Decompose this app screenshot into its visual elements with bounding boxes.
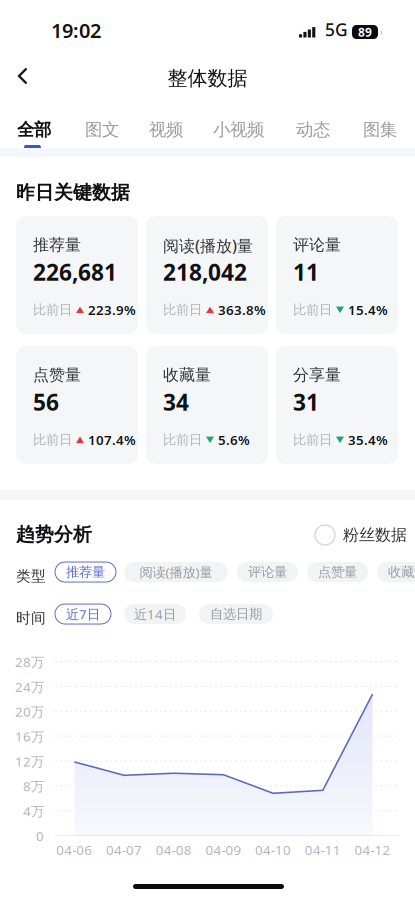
staticText: 比前日 [163, 432, 202, 448]
button[interactable]: 点赞量 [307, 562, 368, 582]
staticText: 评论量 [248, 564, 287, 580]
staticText: 收藏量 [388, 564, 415, 580]
staticText: 11 [293, 257, 319, 287]
staticText: 视频 [149, 119, 183, 140]
staticText: 全部 [17, 119, 51, 140]
button[interactable]: 视频 [141, 110, 191, 149]
staticText: 56 [33, 387, 59, 417]
staticText: 小视频 [213, 119, 264, 140]
staticText: 收藏量 [163, 365, 211, 385]
staticText: 15.4% [348, 301, 388, 319]
staticText: 8万 [23, 777, 44, 795]
staticText: 16万 [15, 728, 44, 745]
button[interactable]: 全部 [9, 110, 59, 149]
staticText: 粉丝数据 [343, 525, 407, 545]
staticText: 89 [358, 24, 372, 40]
button[interactable]: 动态 [288, 110, 338, 149]
staticText: 比前日 [163, 302, 202, 318]
button[interactable]: 收藏量 [377, 562, 415, 582]
staticText: 点赞量 [33, 365, 81, 385]
staticText: 04-07 [106, 841, 142, 859]
staticText: 自选日期 [210, 606, 262, 622]
staticText: 比前日 [293, 302, 332, 318]
button[interactable]: Back [0, 56, 46, 96]
staticText: 04-10 [255, 841, 291, 859]
button[interactable]: 推荐量 [55, 562, 116, 582]
staticText: 04-06 [56, 841, 92, 859]
staticText: 图文 [85, 119, 119, 140]
staticText: 19:02 [51, 17, 101, 44]
button[interactable]: 图文 [77, 110, 127, 149]
staticText: 20万 [15, 703, 44, 720]
staticText: 28万 [15, 653, 44, 671]
staticText: 图集 [363, 119, 397, 140]
staticText: 218,042 [163, 257, 247, 287]
staticText: 04-12 [354, 841, 390, 859]
staticText: 35.4% [348, 431, 388, 449]
staticText: 04-11 [305, 841, 341, 859]
staticText: 363.8% [218, 301, 266, 319]
staticText: 0 [36, 827, 44, 845]
staticText: 近14日 [134, 605, 176, 623]
staticText: 整体数据 [167, 66, 247, 91]
button[interactable]: 近7日 [55, 604, 111, 624]
button[interactable]: 近14日 [124, 604, 186, 624]
staticText: 12万 [15, 752, 44, 770]
staticText: 点赞量 [318, 564, 357, 580]
button[interactable]: 阅读(播放)量 [124, 562, 228, 582]
button[interactable]: 评论量 [237, 562, 298, 582]
staticText: 推荐量 [33, 235, 81, 255]
staticText: 时间 [16, 609, 46, 627]
staticText: 34 [163, 387, 189, 417]
staticText: 226,681 [33, 257, 117, 287]
staticText: 04-09 [205, 841, 241, 859]
staticText: 昨日关键数据 [16, 181, 130, 204]
staticText: 趋势分析 [16, 523, 92, 546]
staticText: 阅读(播放)量 [139, 563, 212, 581]
staticText: 107.4% [88, 431, 136, 449]
staticText: 类型 [16, 567, 46, 585]
staticText: 阅读(播放)量 [163, 235, 253, 256]
staticText: 分享量 [293, 365, 341, 385]
button[interactable]: 小视频 [205, 110, 272, 149]
staticText: 评论量 [293, 235, 341, 255]
staticText: 动态 [296, 119, 330, 140]
staticText: 近7日 [66, 605, 100, 623]
staticText: 5G [325, 18, 348, 41]
button[interactable]: 自选日期 [199, 604, 273, 624]
button[interactable]: 粉丝数据 [315, 525, 407, 545]
staticText: 比前日 [293, 432, 332, 448]
staticText: 04-08 [156, 841, 192, 859]
staticText: 比前日 [33, 302, 72, 318]
staticText: 31 [293, 387, 319, 417]
staticText: 5.6% [218, 431, 250, 449]
button[interactable]: 图集 [355, 110, 405, 149]
staticText: 比前日 [33, 432, 72, 448]
staticText: 24万 [15, 678, 44, 696]
staticText: 推荐量 [66, 564, 105, 580]
staticText: 4万 [23, 802, 44, 820]
staticText: 223.9% [88, 301, 136, 319]
